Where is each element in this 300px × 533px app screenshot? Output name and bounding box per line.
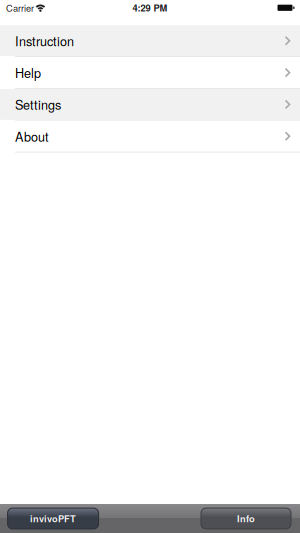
staticText: About	[15, 127, 49, 145]
button[interactable]: invivoPFT	[8, 508, 99, 529]
staticText: Carrier	[6, 1, 34, 14]
staticText: Settings	[15, 95, 61, 113]
button[interactable]: Info	[201, 508, 291, 529]
staticText: Instruction	[15, 32, 74, 50]
button[interactable]: Help	[0, 57, 300, 88]
staticText: 4:29 PM	[132, 1, 167, 14]
staticText: invivoPFT	[30, 512, 76, 525]
button[interactable]: About	[0, 121, 300, 152]
staticText: Help	[15, 63, 41, 82]
staticText: Info	[237, 512, 255, 525]
button[interactable]: Instruction	[0, 25, 300, 56]
button[interactable]: Settings	[0, 89, 300, 120]
